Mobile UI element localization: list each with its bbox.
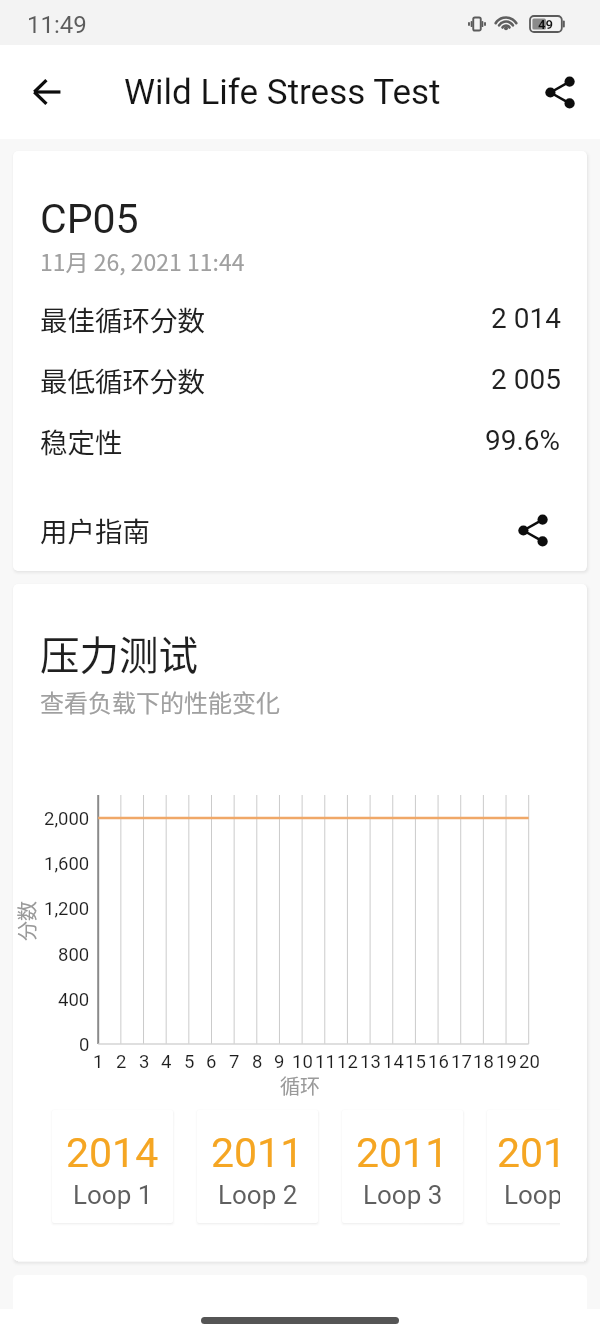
staticText: 分数 [13, 901, 38, 941]
staticText: 0 [79, 1034, 90, 1056]
staticText: 2,000 [44, 808, 90, 830]
staticText: 15 [405, 1051, 426, 1073]
staticText: Loop 4 [504, 1180, 560, 1210]
staticText: 400 [58, 989, 90, 1011]
staticText: 循环 [280, 1071, 320, 1100]
staticText: 14 [383, 1051, 404, 1073]
staticText: Loop 1 [73, 1180, 153, 1210]
staticText: 2 005 [491, 363, 561, 396]
staticText: 17 [451, 1051, 472, 1073]
staticText: 2011 [497, 1129, 560, 1177]
staticText: 9 [274, 1051, 285, 1073]
staticText: 16 [428, 1051, 449, 1073]
button[interactable]: Back [20, 65, 74, 119]
staticText: Loop 2 [218, 1180, 298, 1210]
staticText: Loop 3 [363, 1180, 443, 1210]
staticText: 11 [315, 1051, 336, 1073]
staticText: 1 [93, 1051, 104, 1073]
staticText: 13 [360, 1051, 381, 1073]
staticText: 6 [206, 1051, 217, 1073]
staticText: 7 [229, 1051, 240, 1073]
staticText: 用户指南 [40, 510, 150, 550]
button[interactable]: Share [533, 65, 587, 119]
button[interactable]: 2011 [342, 1110, 463, 1223]
staticText: 800 [58, 944, 90, 966]
button[interactable]: 2014 [52, 1110, 173, 1223]
staticText: 1,600 [44, 853, 90, 875]
staticText: Wild Life Stress Test [124, 72, 441, 113]
staticText: CP05 [40, 195, 139, 243]
staticText: 最佳循环分数 [40, 299, 205, 339]
button[interactable]: 用户指南 [13, 499, 587, 561]
button[interactable]: 2011 [487, 1110, 560, 1223]
staticText: 20 [519, 1051, 540, 1073]
staticText: 1,200 [44, 898, 90, 920]
staticText: 12 [337, 1051, 358, 1073]
staticText: 3 [139, 1051, 150, 1073]
staticText: 8 [252, 1051, 263, 1073]
staticText: 19 [496, 1051, 517, 1073]
staticText: 11:49 [27, 11, 87, 39]
staticText: 2 [116, 1051, 127, 1073]
staticText: 10 [292, 1051, 313, 1073]
staticText: 2011 [356, 1129, 449, 1177]
staticText: 4 [161, 1051, 172, 1073]
staticText: 2 014 [491, 302, 561, 335]
staticText: 5 [184, 1051, 195, 1073]
staticText: 99.6% [485, 424, 561, 457]
staticText: 压力测试 [40, 624, 198, 681]
staticText: 18 [473, 1051, 494, 1073]
staticText: 49 [538, 17, 553, 32]
staticText: 最低循环分数 [40, 360, 205, 400]
button[interactable]: 2011 [197, 1110, 318, 1223]
staticText: 11月 26, 2021 11:44 [40, 244, 245, 277]
staticText: 2014 [66, 1129, 159, 1177]
staticText: 2011 [211, 1129, 304, 1177]
staticText: 查看负载下的性能变化 [40, 684, 280, 719]
staticText: 稳定性 [40, 421, 123, 461]
